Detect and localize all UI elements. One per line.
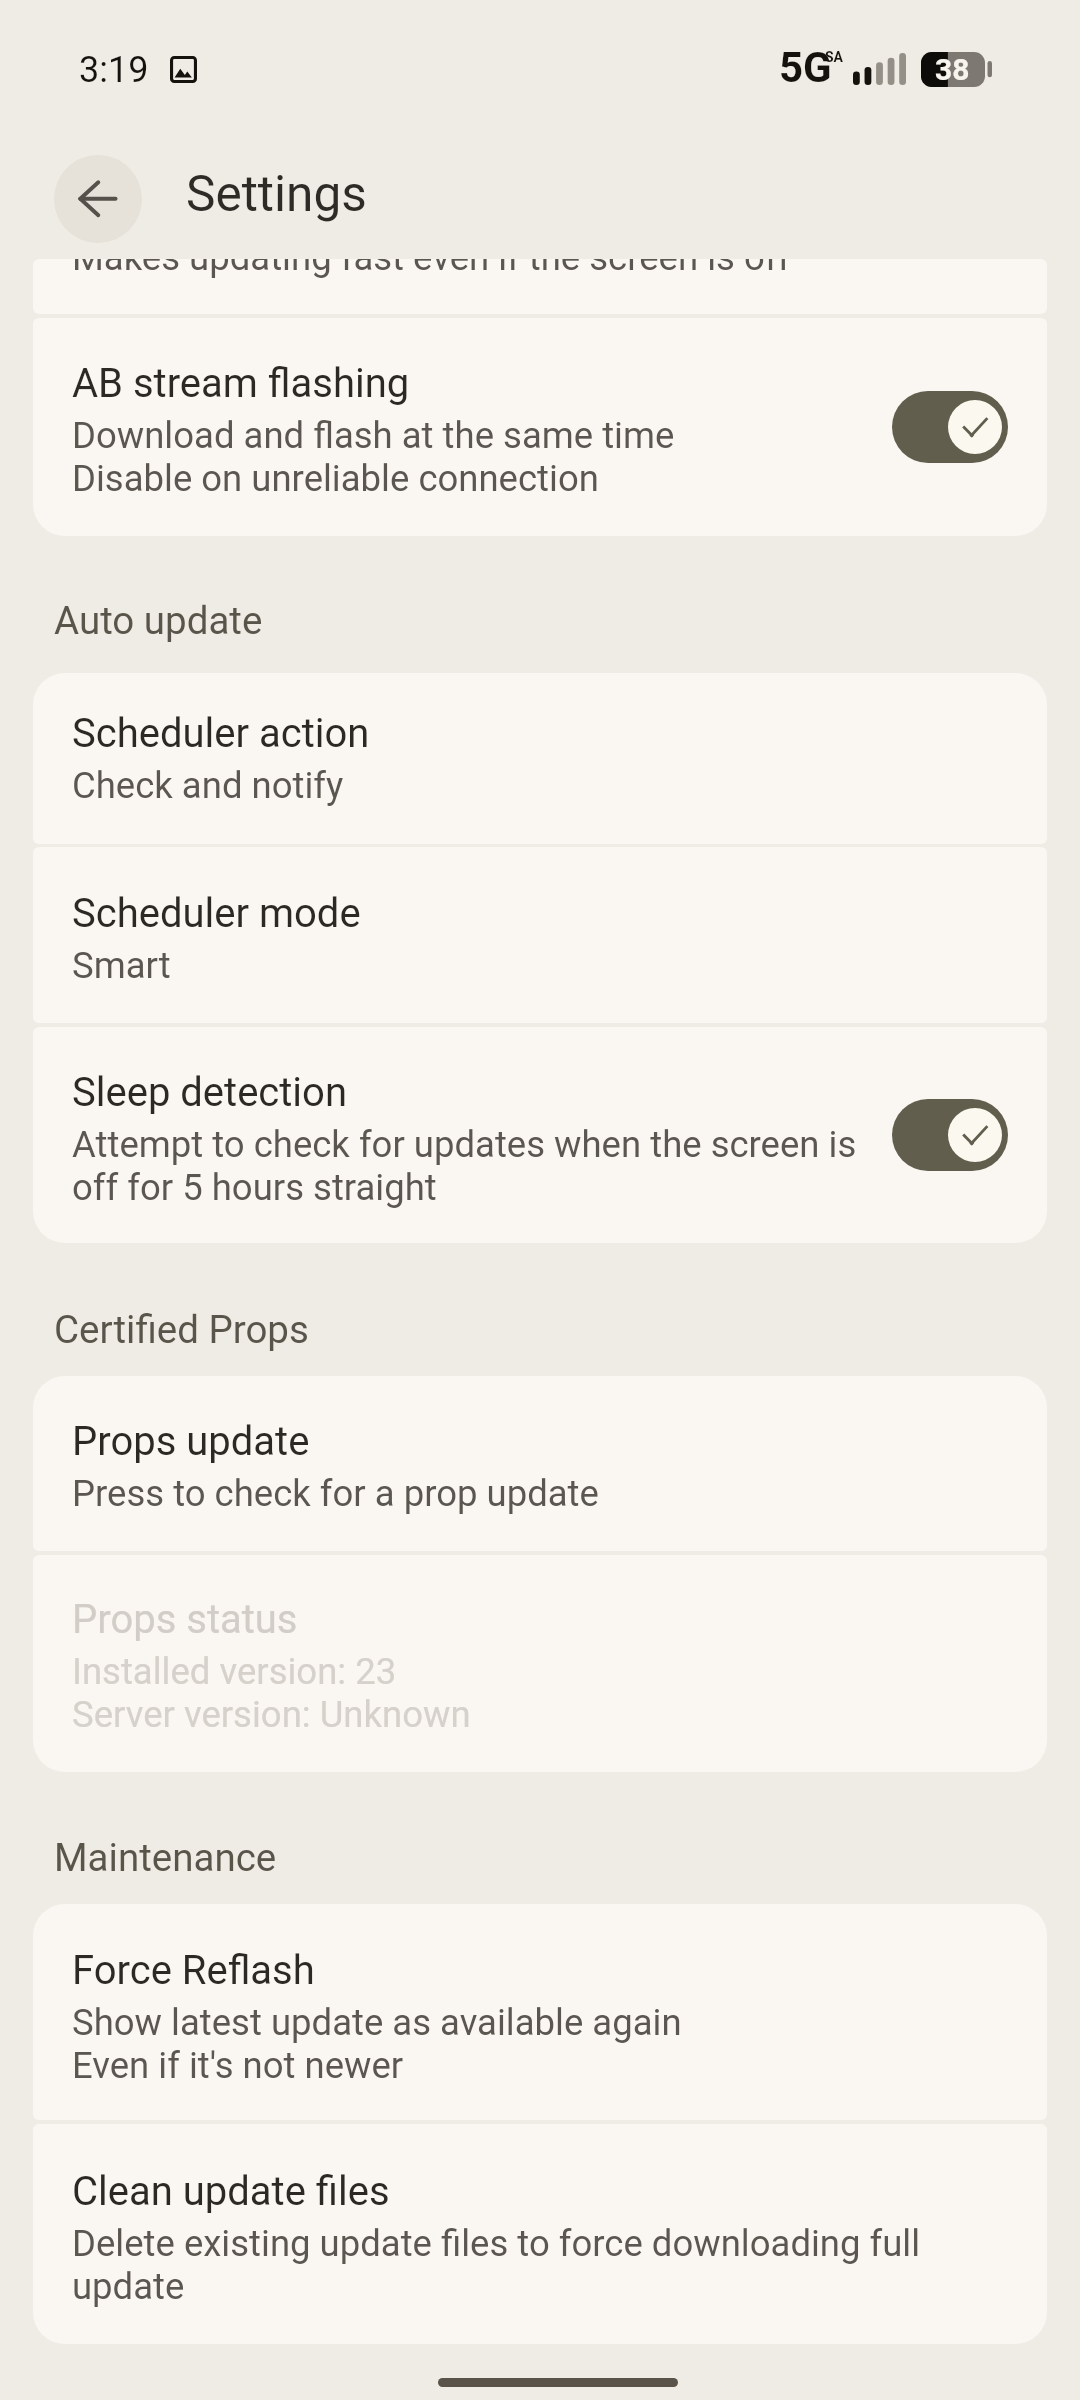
staticText: 5G [779,43,832,92]
staticText: Press to check for a prop update [72,1472,599,1515]
staticText: Scheduler action [72,710,370,757]
button[interactable]: Clean update files [33,2124,1047,2344]
staticText: Sleep detection [72,1069,347,1116]
staticText: SA [825,49,844,65]
staticText: Check and notify [72,764,344,807]
button[interactable]: Scheduler mode [33,847,1047,1023]
staticText: Clean update files [72,2168,390,2215]
button[interactable]: Props update [33,1376,1047,1551]
staticText: Props status [72,1596,298,1643]
button[interactable]: Props status [33,1555,1047,1772]
staticText: Certified Props [54,1307,309,1352]
staticText: Download and flash at the same time Disa… [72,414,675,500]
staticText: 3:19 [79,49,149,91]
button[interactable]: AB stream flashing [33,318,1047,536]
staticText: Scheduler mode [72,890,361,937]
staticText: Maintenance [54,1835,277,1880]
button[interactable]: Toggle [892,391,1008,463]
staticText: 38 [935,52,970,87]
staticText: Installed version: 23 Server version: Un… [72,1650,471,1736]
button[interactable]: Force Reflash [33,1904,1047,2120]
staticText: Force Reflash [72,1947,315,1994]
button[interactable]: Toggle [892,1099,1008,1171]
button[interactable]: Back [54,155,142,243]
button[interactable]: Sleep detection [33,1027,1047,1243]
staticText: AB stream flashing [72,360,410,407]
staticText: Settings [186,165,367,223]
staticText: Attempt to check for updates when the sc… [72,1123,857,1209]
staticText: Props update [72,1418,310,1465]
staticText: Auto update [54,598,263,643]
staticText: Smart [72,944,171,987]
staticText: Delete existing update files to force do… [72,2222,921,2308]
staticText: Show latest update as available again Ev… [72,2001,682,2087]
button[interactable]: Makes updating fast even if the screen i… [33,259,1047,314]
button[interactable]: Scheduler action [33,673,1047,844]
staticText: Makes updating fast even if the screen i… [72,259,791,279]
